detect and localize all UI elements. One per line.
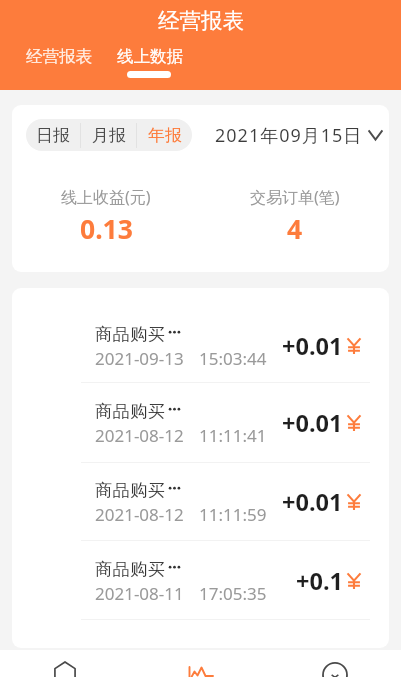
staticText: 2021-08-12	[95, 424, 184, 447]
staticText: 2021-08-11	[95, 582, 184, 605]
staticText: 商品购买	[95, 559, 166, 580]
button[interactable]: Reports	[180, 650, 220, 677]
button[interactable]: 线上数据	[117, 46, 183, 67]
staticText: 4	[287, 211, 303, 247]
button[interactable]: 经营报表	[26, 46, 92, 67]
staticText: 2021-09-13	[95, 347, 184, 370]
staticText: +0.01	[282, 407, 343, 439]
staticText: 商品购买	[95, 324, 166, 345]
staticText: 月报	[92, 125, 126, 146]
button[interactable]: 商品购买	[12, 463, 389, 541]
staticText: 日报	[36, 125, 70, 146]
staticText: 0.13	[80, 211, 133, 247]
button[interactable]: 商品购买	[12, 308, 389, 383]
button[interactable]: 商品购买	[12, 383, 389, 463]
button[interactable]: 年报	[137, 119, 192, 151]
staticText: 11:11:41	[199, 424, 267, 447]
button[interactable]: 日报	[26, 119, 80, 151]
staticText: 经营报表	[26, 46, 92, 67]
staticText: 2021年09月15日	[215, 123, 363, 148]
staticText: +0.01	[282, 330, 343, 362]
staticText: +0.1	[296, 565, 343, 597]
staticText: 经营报表	[158, 7, 244, 34]
staticText: 线上收益(元)	[61, 186, 151, 208]
button[interactable]: Profile	[315, 650, 355, 677]
staticText: 商品购买	[95, 480, 166, 501]
button[interactable]: 2021年09月15日	[215, 122, 389, 148]
staticText: 线上数据	[117, 46, 183, 67]
staticText: 年报	[148, 125, 182, 146]
staticText: 15:03:44	[199, 347, 267, 370]
button[interactable]: Home	[45, 650, 85, 677]
staticText: 11:11:59	[199, 503, 267, 526]
staticText: 2021-08-12	[95, 503, 184, 526]
button[interactable]: 月报	[81, 119, 136, 151]
staticText: 交易订单(笔)	[250, 186, 340, 208]
staticText: 17:05:35	[199, 582, 267, 605]
button[interactable]: 商品购买	[12, 541, 389, 620]
staticText: 商品购买	[95, 401, 166, 422]
staticText: +0.01	[282, 486, 343, 518]
